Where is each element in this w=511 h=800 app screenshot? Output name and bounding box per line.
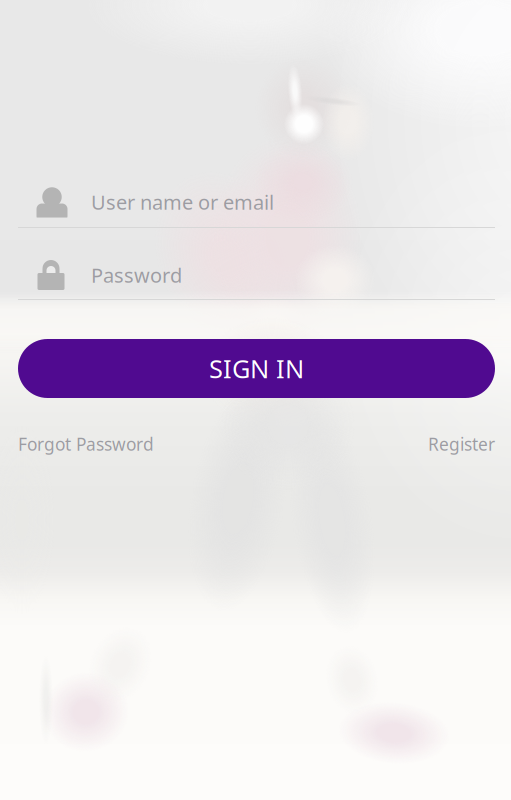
button[interactable]: Password [18, 251, 495, 299]
button[interactable]: SIGN IN [18, 339, 495, 398]
button[interactable]: User name or email [18, 178, 495, 226]
staticText: SIGN IN [209, 352, 304, 385]
button[interactable]: Register [428, 432, 495, 455]
staticText: User name or email [91, 189, 274, 215]
staticText: Register [428, 432, 495, 455]
button[interactable]: Forgot Password [18, 432, 154, 455]
staticText: Forgot Password [18, 432, 154, 455]
staticText: Password [91, 262, 182, 288]
